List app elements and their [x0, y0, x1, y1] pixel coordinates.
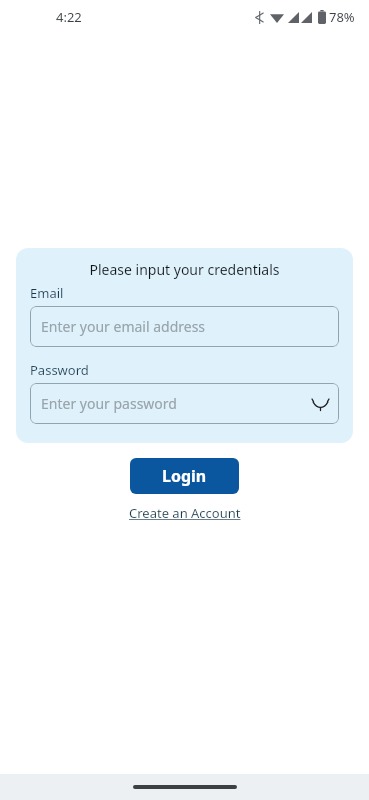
staticText: Login: [162, 465, 207, 487]
staticText: Password: [30, 361, 89, 379]
staticText: 78%: [329, 8, 355, 26]
button[interactable]: Create an Account: [125, 502, 245, 524]
staticText: Please input your credentials: [89, 260, 280, 279]
button[interactable]: Login: [130, 458, 239, 494]
staticText: Create an Account: [129, 504, 241, 522]
staticText: Email: [30, 284, 64, 302]
button[interactable]: Show password: [308, 392, 332, 416]
button[interactable]: Enter your password: [30, 383, 339, 424]
staticText: Enter your email address: [41, 317, 206, 336]
button[interactable]: Enter your email address: [30, 306, 339, 347]
staticText: 4:22: [56, 8, 82, 26]
staticText: Enter your password: [41, 394, 177, 413]
